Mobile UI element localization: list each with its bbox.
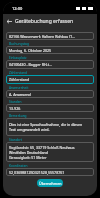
button[interactable]: A. Anwesend (6, 90, 94, 98)
staticText: Einbauplatz (9, 56, 27, 60)
button[interactable]: Back (3, 15, 15, 27)
staticText: 82166 Wasserwerk Haltern Rohbau (1... (9, 34, 76, 39)
staticText: 12:00 (12, 6, 23, 11)
staticText: Zählerstand (9, 77, 30, 82)
staticText: A. Anwesend (9, 92, 31, 97)
staticText: Standort (9, 138, 23, 142)
staticText: 52,0369881250321528,55578761 (9, 170, 65, 175)
button[interactable]: 52,0369881250321528,55578761 (6, 168, 94, 176)
button[interactable]: Montag, 6. Oktober 2025 (6, 46, 94, 54)
staticText: 04100430 - Bagger RH-t... (9, 62, 52, 67)
staticText: Anwesenheit (9, 86, 29, 90)
staticText: Bemerkung (9, 114, 27, 118)
staticText: Dies ist eine Sprachaufnahme, die in die… (9, 122, 83, 132)
staticText: Stunden (9, 100, 22, 104)
staticText: Montag, 6. Oktober 2025 (9, 48, 52, 53)
button[interactable]: Zählerstand (6, 75, 94, 84)
staticText: Gerätebuchung erfassen (15, 18, 74, 25)
staticText: Buchungstag (9, 42, 29, 46)
staticText: Übernehmen (39, 181, 62, 186)
staticText: Vogtlandstr. 65, 33719 Schloß Neuhaus We… (9, 145, 75, 160)
button[interactable]: Dies ist eine Sprachaufnahme, die in die… (6, 118, 94, 136)
button[interactable]: Vogtlandstr. 65, 33719 Schloß Neuhaus We… (6, 142, 94, 162)
staticText: Zählerstand (9, 71, 27, 75)
staticText: 13.926 (9, 106, 21, 111)
button[interactable]: Übernehmen (37, 179, 63, 187)
button[interactable]: 82166 Wasserwerk Haltern Rohbau (1... (6, 32, 94, 40)
button[interactable]: 04100430 - Bagger RH-t... (6, 60, 94, 69)
button[interactable]: 13.926 (6, 104, 94, 112)
staticText: Koordinaten (9, 164, 28, 168)
